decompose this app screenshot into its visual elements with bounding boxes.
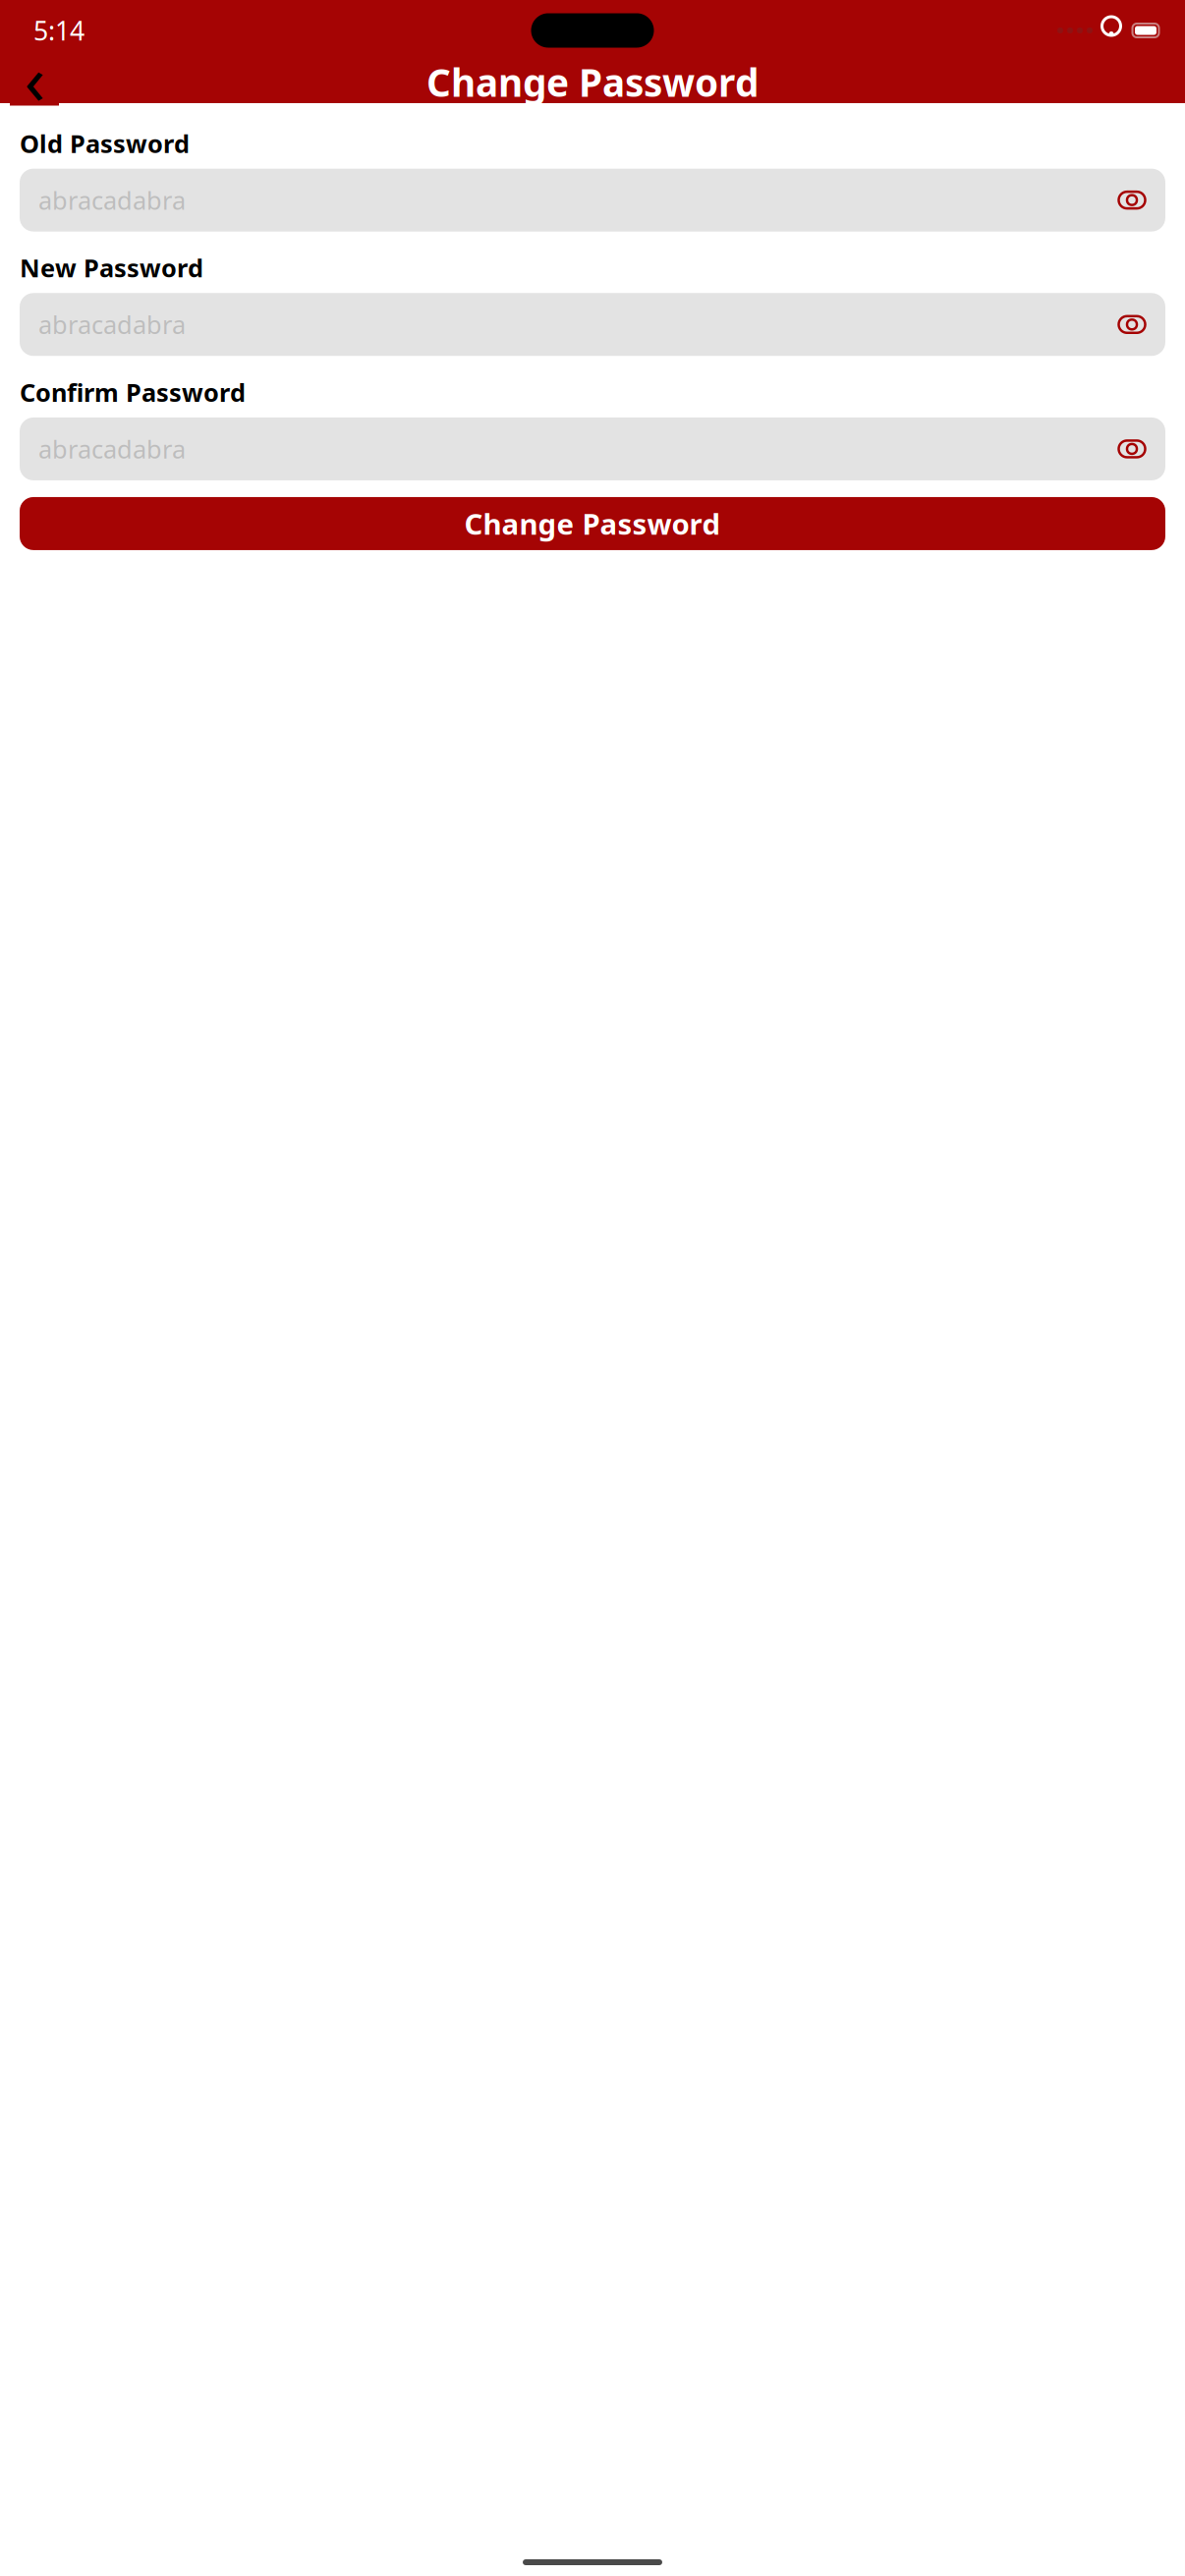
button[interactable]: abracadabra xyxy=(20,169,1165,231)
staticText: Change Password xyxy=(464,504,721,543)
staticText: Confirm Password xyxy=(20,376,246,409)
button[interactable]: Back xyxy=(10,58,59,106)
button[interactable]: abracadabra xyxy=(20,293,1165,356)
button[interactable]: abracadabra xyxy=(20,417,1165,480)
staticText: ‹ xyxy=(24,33,45,123)
staticText: Old Password xyxy=(20,127,190,160)
staticText: abracadabra xyxy=(38,308,186,341)
staticText: abracadabra xyxy=(38,184,186,217)
staticText: abracadabra xyxy=(38,432,186,465)
staticText: Change Password xyxy=(426,57,759,107)
button[interactable]: Change Password xyxy=(20,497,1165,550)
staticText: 5:14 xyxy=(33,13,85,48)
staticText: New Password xyxy=(20,251,203,284)
